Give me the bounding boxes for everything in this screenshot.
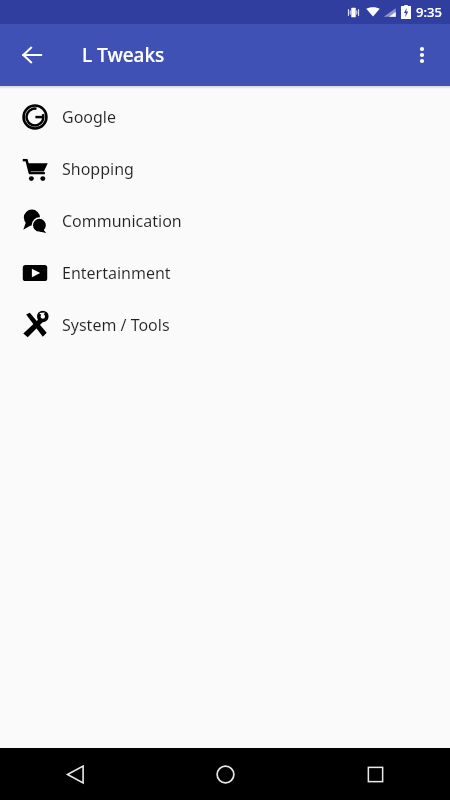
button[interactable]: Google	[0, 91, 450, 143]
button[interactable]: Entertainment	[0, 247, 450, 299]
staticText: Google	[62, 106, 117, 128]
button[interactable]: Home	[150, 748, 300, 800]
button[interactable]: More options	[398, 31, 446, 79]
staticText: Communication	[62, 210, 182, 232]
staticText: Shopping	[62, 158, 134, 180]
staticText: Entertainment	[62, 262, 171, 284]
button[interactable]: Back	[8, 31, 56, 79]
staticText: 9:35	[416, 3, 442, 21]
staticText: System / Tools	[62, 314, 170, 336]
button[interactable]: Recent apps	[300, 748, 450, 800]
button[interactable]: Back	[0, 748, 150, 800]
button[interactable]: Communication	[0, 195, 450, 247]
staticText: L Tweaks	[82, 42, 165, 68]
button[interactable]: System / Tools	[0, 299, 450, 351]
button[interactable]: Shopping	[0, 143, 450, 195]
